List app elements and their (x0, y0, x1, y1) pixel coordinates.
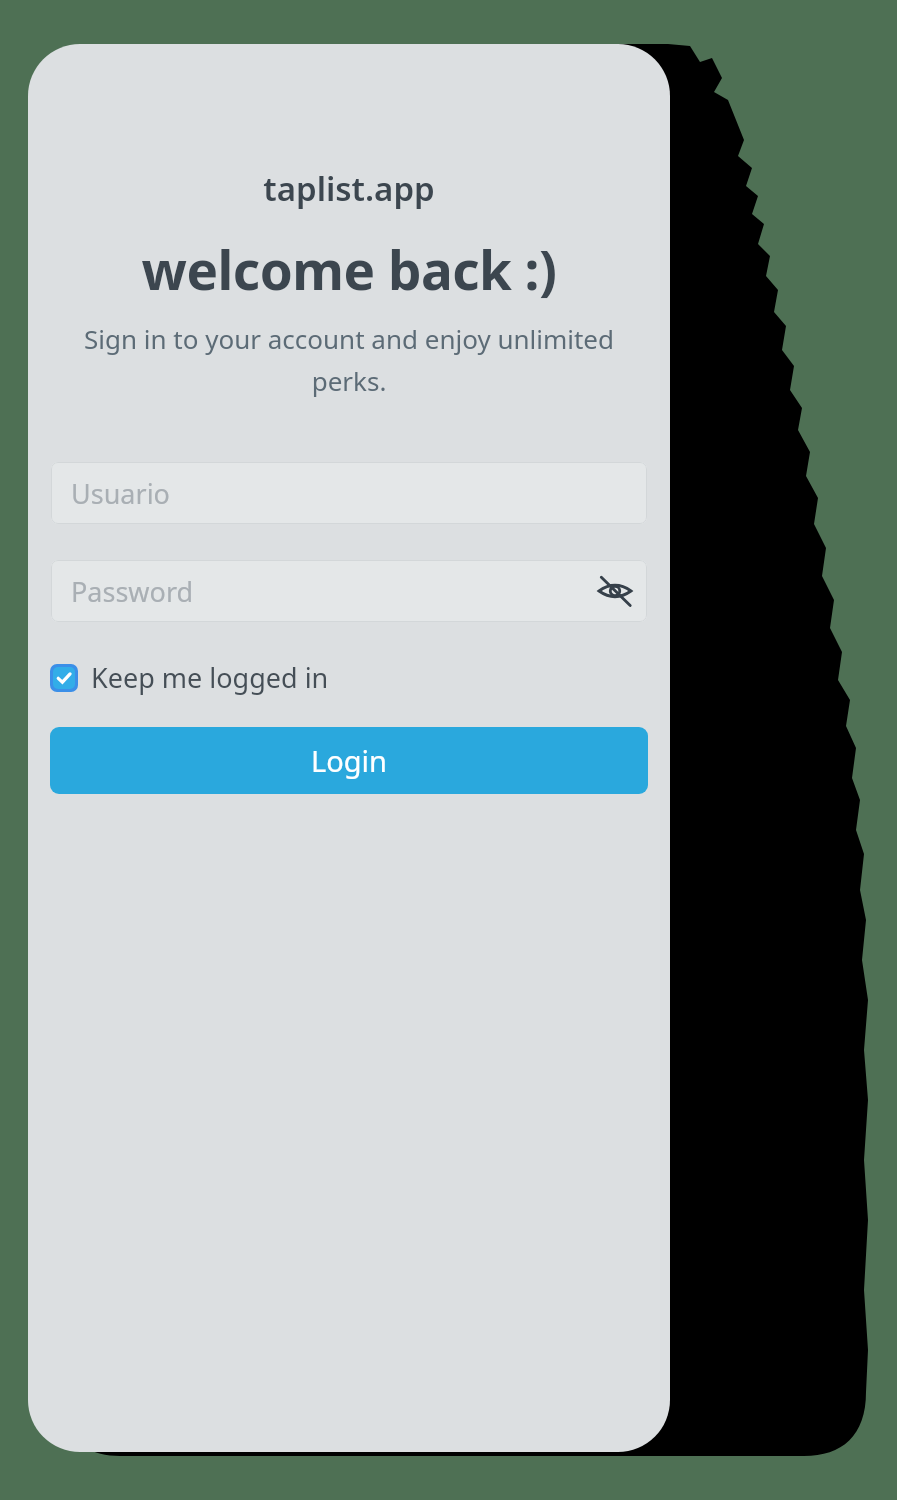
staticText: Password (71, 573, 194, 610)
staticText: taplist.app (28, 166, 670, 211)
button[interactable]: Usuario (51, 462, 647, 524)
staticText: Usuario (71, 475, 170, 512)
button[interactable]: Show password (589, 565, 641, 617)
staticText: Keep me logged in (91, 659, 329, 696)
staticText: Sign in to your account and enjoy unlimi… (58, 321, 640, 399)
staticText: welcome back :) (28, 233, 670, 305)
staticText: Login (311, 741, 387, 780)
button[interactable]: Login (50, 727, 648, 794)
button[interactable]: Keep me logged in (50, 655, 339, 700)
button[interactable]: Password (51, 560, 647, 622)
